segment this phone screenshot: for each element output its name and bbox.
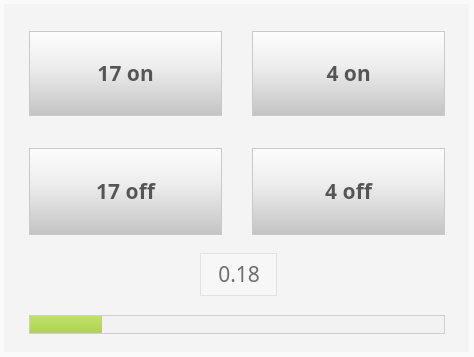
staticText: 17 on — [97, 59, 154, 88]
staticText: 17 off — [96, 177, 155, 206]
staticText: 0.18 — [218, 260, 260, 289]
button[interactable]: 4 off — [252, 148, 445, 235]
button[interactable]: 17 on — [29, 31, 222, 116]
other: Progress 18 percent — [29, 315, 445, 334]
button[interactable]: 17 off — [29, 148, 222, 235]
button[interactable]: 0.18 — [200, 253, 277, 296]
staticText: 4 off — [325, 177, 372, 206]
staticText: 4 on — [326, 59, 371, 88]
button[interactable]: 4 on — [252, 31, 445, 116]
